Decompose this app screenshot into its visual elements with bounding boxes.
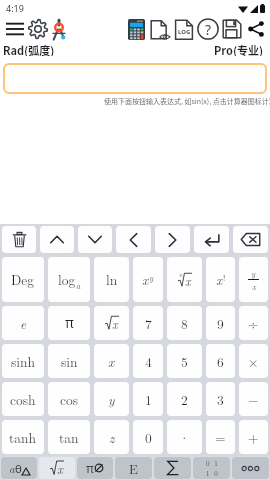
button[interactable]: sinh	[2, 344, 44, 378]
button[interactable]: x	[133, 257, 163, 302]
button[interactable]: tanh	[2, 420, 44, 454]
staticText: sin	[61, 352, 78, 371]
button[interactable]: Left	[116, 226, 151, 253]
staticText: x	[252, 280, 256, 292]
staticText: aθ	[9, 460, 22, 476]
button[interactable]: e	[2, 306, 44, 340]
staticText: Rad(弧度)	[3, 42, 55, 56]
button[interactable]: 9	[206, 306, 235, 340]
staticText: E	[129, 459, 138, 477]
button[interactable]: Down	[78, 226, 112, 253]
button[interactable]: 3	[206, 382, 235, 416]
button[interactable]: Right	[155, 226, 190, 253]
staticText: sinh	[11, 352, 36, 371]
button[interactable]: 4	[133, 344, 163, 378]
button[interactable]: x	[39, 457, 75, 479]
staticText: y	[251, 267, 256, 279]
other: Enter	[203, 232, 221, 248]
staticText: cos	[60, 390, 79, 409]
button[interactable]: cos	[48, 382, 90, 416]
button[interactable]: Save	[220, 17, 244, 41]
button[interactable]: cosh	[2, 382, 44, 416]
staticText: x	[185, 272, 191, 290]
staticText: a	[76, 279, 81, 291]
button[interactable]: 0 1	[193, 457, 230, 479]
button[interactable]: Backspace	[233, 226, 268, 253]
button[interactable]: tan	[48, 420, 90, 454]
button[interactable]: x	[206, 257, 235, 302]
button[interactable]: x	[94, 306, 129, 340]
button[interactable]: Geometry tools	[52, 18, 66, 40]
button[interactable]: 1	[133, 382, 163, 416]
button[interactable]: Settings	[28, 19, 48, 39]
button[interactable]: 8	[167, 306, 202, 340]
staticText: y	[108, 390, 115, 409]
button[interactable]: ·	[167, 420, 202, 454]
button[interactable]	[232, 457, 269, 479]
button[interactable]: 5	[167, 344, 202, 378]
button[interactable]: Calculate	[124, 17, 148, 41]
staticText: 1 0	[206, 468, 218, 478]
staticText: ln	[106, 270, 118, 289]
button[interactable]: Deg	[2, 257, 44, 302]
button[interactable]: E	[115, 457, 152, 479]
staticText: 使用下面按钮输入表达式, 如sin(x), 点击计算器图标计算	[104, 96, 270, 106]
other: Right	[165, 230, 180, 250]
staticText: ÷	[248, 314, 259, 333]
staticText: 1	[145, 390, 152, 409]
button[interactable]: Preview result	[148, 17, 172, 41]
staticText: 7	[145, 314, 152, 333]
button[interactable]: Menu	[6, 22, 24, 36]
staticText: Pro(专业)	[214, 42, 264, 56]
button[interactable]: z	[94, 420, 129, 454]
staticText: log	[58, 270, 76, 289]
button[interactable]: Enter	[194, 226, 229, 253]
staticText: 9	[217, 314, 224, 333]
staticText: =	[215, 428, 226, 447]
staticText: LOG	[178, 28, 191, 36]
button[interactable]: y	[94, 382, 129, 416]
button[interactable]: y	[239, 257, 268, 302]
staticText: x	[57, 460, 63, 478]
other: Up	[47, 232, 67, 247]
button[interactable]: Log	[172, 17, 196, 41]
button[interactable]: ln	[94, 257, 129, 302]
button[interactable]: ×	[239, 344, 268, 378]
button[interactable]: =	[206, 420, 235, 454]
button[interactable]: Help	[196, 17, 220, 41]
button[interactable]: π	[77, 457, 113, 479]
staticText: ×	[248, 352, 259, 371]
button[interactable]: ÷	[239, 306, 268, 340]
staticText: x	[216, 270, 223, 289]
button[interactable]: 7	[133, 306, 163, 340]
staticText: π	[65, 314, 74, 332]
button[interactable]: Share	[244, 17, 268, 41]
button[interactable]	[154, 457, 191, 479]
button[interactable]: 2	[167, 382, 202, 416]
staticText: z	[109, 428, 115, 447]
button[interactable]: 6	[206, 344, 235, 378]
button[interactable]: aθ	[1, 457, 37, 479]
button[interactable]: π	[48, 306, 90, 340]
staticText: tanh	[9, 428, 37, 447]
staticText: !	[223, 271, 226, 283]
staticText: y	[149, 271, 154, 283]
other: Clear	[12, 231, 27, 248]
staticText: −	[248, 390, 259, 409]
button[interactable]: Clear	[2, 226, 36, 253]
button[interactable]	[3, 63, 267, 94]
button[interactable]: Up	[40, 226, 74, 253]
staticText: x	[108, 352, 115, 371]
button[interactable]: −	[239, 382, 268, 416]
button[interactable]: +	[239, 420, 268, 454]
staticText: 3	[217, 390, 224, 409]
staticText: x	[112, 315, 118, 333]
button[interactable]: 0	[133, 420, 163, 454]
button[interactable]: sin	[48, 344, 90, 378]
staticText: cosh	[10, 390, 36, 409]
staticText: 2	[181, 390, 188, 409]
button[interactable]: log	[48, 257, 90, 302]
button[interactable]: x	[167, 257, 202, 302]
button[interactable]: x	[94, 344, 129, 378]
staticText: +	[248, 428, 259, 447]
